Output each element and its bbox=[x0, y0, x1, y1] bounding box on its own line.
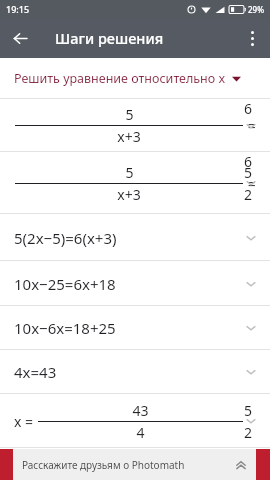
staticText: 5 bbox=[125, 105, 134, 124]
staticText: 19:15 bbox=[6, 3, 30, 15]
button[interactable]: 10x−25=6x+18 bbox=[0, 261, 270, 306]
staticText: x+3 bbox=[117, 185, 141, 204]
button[interactable]: Back bbox=[0, 18, 40, 58]
button[interactable]: 5(2x−5)=6(x+3) bbox=[0, 214, 270, 261]
button[interactable]: Решить уравнение относительно x bbox=[0, 58, 270, 99]
button[interactable]: More options bbox=[234, 20, 270, 56]
button[interactable]: x = bbox=[0, 394, 270, 448]
button[interactable]: 10x−6x=18+25 bbox=[0, 306, 270, 350]
staticText: 29% bbox=[248, 4, 264, 15]
staticText: Расскажите друзьям о Photomath bbox=[22, 458, 185, 472]
staticText: 4x=43 bbox=[14, 362, 57, 382]
staticText: 5(2x−5)=6(x+3) bbox=[14, 228, 117, 248]
staticText: x = bbox=[14, 412, 37, 431]
staticText: 43 bbox=[132, 401, 149, 420]
staticText: 10x−25=6x+18 bbox=[14, 274, 116, 294]
staticText: Решить уравнение относительно x bbox=[14, 70, 226, 87]
button[interactable]: 5 bbox=[0, 99, 270, 152]
staticText: Шаги решения bbox=[55, 28, 164, 48]
staticText: 5 bbox=[125, 163, 134, 182]
button[interactable]: 5 bbox=[0, 152, 270, 214]
staticText: 4 bbox=[136, 423, 145, 442]
staticText: x+3 bbox=[117, 127, 141, 146]
staticText: 10x−6x=18+25 bbox=[14, 318, 116, 338]
button[interactable]: Расскажите друзьям о Photomath bbox=[0, 449, 270, 480]
button[interactable]: 4x=43 bbox=[0, 350, 270, 394]
